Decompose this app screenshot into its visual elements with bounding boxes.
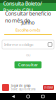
button[interactable]: Recents bbox=[41, 95, 44, 98]
staticText: Baixe agora mesmo bbox=[11, 87, 36, 91]
staticText: Consulta Boleto/Parcela GRU bbox=[3, 0, 42, 14]
button[interactable]: Jogar de graça bbox=[0, 82, 56, 93]
staticText: Consultar bbox=[18, 62, 38, 67]
staticText: ou bbox=[26, 52, 30, 57]
button[interactable]: Consultar bbox=[14, 61, 41, 68]
button[interactable]: Home bbox=[26, 95, 30, 98]
staticText: Informe o código bbox=[4, 42, 33, 47]
staticText: Instalar bbox=[44, 86, 53, 89]
staticText: Escolha o mês bbox=[15, 27, 40, 33]
staticText: Consultar benefício no mês de bbox=[5, 10, 51, 24]
staticText: Jogar de graça bbox=[11, 84, 30, 87]
staticText: Junho bbox=[21, 19, 34, 26]
button[interactable]: Back bbox=[12, 95, 15, 98]
